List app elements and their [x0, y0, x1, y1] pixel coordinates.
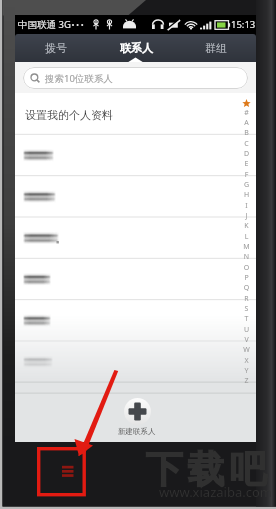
- staticText: D: [239, 149, 254, 159]
- button[interactable]: 新建联系人: [118, 398, 156, 434]
- button[interactable]: [15, 93, 256, 134]
- button[interactable]: 群组: [176, 34, 256, 62]
- staticText: I: [239, 201, 254, 211]
- staticText: Q: [239, 283, 254, 293]
- staticText: T: [239, 314, 254, 324]
- staticText: Y: [239, 366, 254, 376]
- button[interactable]: [15, 176, 256, 217]
- staticText: B: [239, 128, 254, 138]
- staticText: R: [239, 294, 254, 304]
- button[interactable]: 联系人: [96, 34, 176, 62]
- staticText: X: [239, 356, 254, 366]
- staticText: C: [239, 139, 254, 149]
- staticText: Z: [239, 376, 254, 386]
- staticText: P: [239, 273, 254, 283]
- staticText: www.xiazaiba.com: [159, 483, 272, 501]
- button[interactable]: [15, 258, 256, 299]
- staticText: J: [239, 211, 254, 221]
- staticText: M: [239, 242, 254, 252]
- button[interactable]: 搜索10位联系人: [23, 67, 248, 89]
- button[interactable]: Menu: [37, 447, 86, 496]
- staticText: S: [239, 304, 254, 314]
- staticText: 15:13: [231, 18, 256, 31]
- staticText: 搜索10位联系人: [45, 72, 113, 85]
- button[interactable]: 拨号: [15, 34, 96, 62]
- staticText: 联系人: [120, 41, 153, 55]
- staticText: W: [239, 345, 254, 355]
- staticText: 群组: [205, 41, 227, 55]
- staticText: 设置我的个人资料: [25, 108, 113, 122]
- staticText: N: [239, 252, 254, 262]
- staticText: E: [239, 159, 254, 169]
- staticText: 新建联系人: [118, 427, 156, 436]
- staticText: K: [239, 221, 254, 231]
- staticText: O: [239, 263, 254, 273]
- staticText: L: [239, 232, 254, 242]
- staticText: 下载吧: [143, 446, 269, 493]
- button[interactable]: [15, 341, 256, 382]
- staticText: #: [239, 108, 254, 118]
- staticText: F: [239, 170, 254, 180]
- button[interactable]: [15, 300, 256, 341]
- staticText: G: [239, 180, 254, 190]
- staticText: 中国联通 3G: [18, 18, 71, 31]
- button[interactable]: [15, 217, 256, 258]
- button[interactable]: [15, 134, 256, 175]
- staticText: 拨号: [45, 41, 67, 55]
- staticText: V: [239, 335, 254, 345]
- button[interactable]: Alphabet index: [239, 93, 254, 442]
- staticText: H: [239, 190, 254, 200]
- staticText: A: [239, 118, 254, 128]
- staticText: U: [239, 325, 254, 335]
